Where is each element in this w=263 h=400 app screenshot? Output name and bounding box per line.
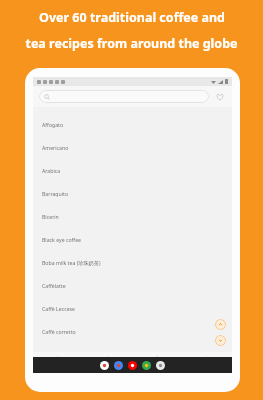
button[interactable]: Recipes [82,352,132,373]
staticText: Caffè Leccese [42,305,75,312]
button[interactable]: App [114,361,123,370]
staticText: Caffè corretto [42,328,76,335]
staticText: Boba milk tea (珍珠奶茶) [42,259,101,266]
button[interactable]: Arabica [33,159,232,182]
button[interactable]: Barraquito [33,182,232,205]
staticText: Recipes [100,365,114,370]
button[interactable]: Caffè Leccese [33,297,232,320]
staticText: Americano [42,144,69,151]
button[interactable]: Scroll up [215,319,226,330]
staticText: Black eye coffee [42,236,82,243]
button[interactable]: Scroll down [215,335,226,346]
button[interactable]: Caffè corretto [33,320,232,343]
button[interactable]: Boba milk tea (珍珠奶茶) [33,251,232,274]
staticText: Arabica [42,167,61,174]
staticText: Over 60 traditional coffee and [39,9,225,26]
button[interactable]: Bicerin [33,205,232,228]
button[interactable]: Caffèlatte [33,274,232,297]
staticText: Bicerin [42,213,59,220]
button[interactable]: Settings [182,352,232,373]
staticText: Affogato [42,121,64,128]
button[interactable]: Black eye coffee [33,228,232,251]
staticText: Barraquito [42,190,69,197]
button[interactable]: App [156,361,165,370]
button[interactable]: Favs [132,352,182,373]
button[interactable]: App [100,361,109,370]
button[interactable]: Affogato [33,113,232,136]
staticText: tea recipes from around the globe [25,35,238,52]
staticText: Caffèlatte [42,282,66,289]
button[interactable]: Home [33,352,82,373]
button[interactable]: App [142,361,151,370]
button[interactable]: App [128,361,137,370]
button[interactable] [39,90,209,103]
button[interactable]: Favourites [214,91,226,103]
staticText: Favs [153,365,161,370]
button[interactable]: Americano [33,136,232,159]
